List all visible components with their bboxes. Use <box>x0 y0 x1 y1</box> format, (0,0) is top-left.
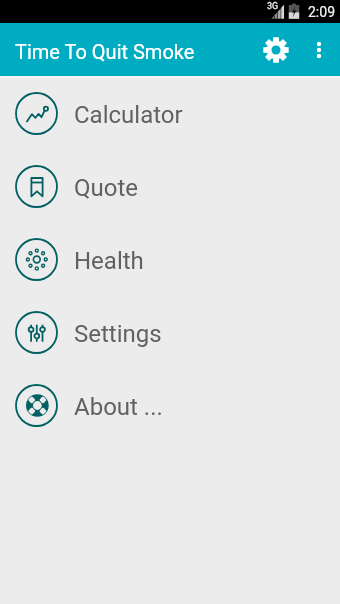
button[interactable]: Calculator <box>0 77 340 150</box>
staticText: Calculator <box>74 101 183 129</box>
staticText: Time To Quit Smoke <box>15 40 195 63</box>
button[interactable]: About ... <box>0 369 340 442</box>
button[interactable]: Quote <box>0 150 340 223</box>
staticText: Health <box>74 247 144 275</box>
staticText: 2:09 <box>308 4 335 20</box>
staticText: About ... <box>74 393 163 421</box>
staticText: Settings <box>74 320 162 348</box>
button[interactable]: Settings <box>0 296 340 369</box>
staticText: 3G <box>267 1 279 12</box>
button[interactable]: Health <box>0 223 340 296</box>
button[interactable]: More options <box>298 29 340 71</box>
button[interactable]: Settings <box>254 28 298 72</box>
staticText: Quote <box>74 174 139 202</box>
